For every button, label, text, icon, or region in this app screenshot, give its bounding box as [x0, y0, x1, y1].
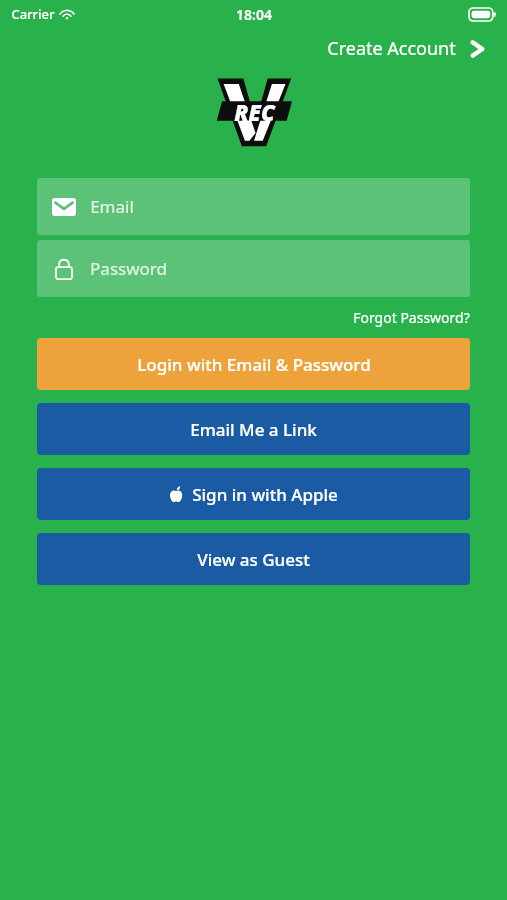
- button[interactable]: Email: [37, 178, 470, 235]
- button[interactable]: Password: [37, 240, 470, 297]
- staticText: Email: [90, 195, 134, 218]
- staticText: 18:04: [236, 5, 272, 24]
- staticText: Carrier: [11, 5, 55, 23]
- button[interactable]: Create Account: [311, 28, 507, 69]
- button[interactable]: Forgot Password?: [341, 306, 507, 329]
- button[interactable]: Login with Email & Password: [37, 338, 470, 390]
- staticText: REC: [234, 97, 275, 127]
- button[interactable]: Email Me a Link: [37, 403, 470, 455]
- staticText: View as Guest: [197, 548, 310, 571]
- button[interactable]: Sign in with Apple: [37, 468, 470, 520]
- staticText: Create Account: [327, 36, 456, 61]
- staticText: Login with Email & Password: [137, 353, 371, 376]
- staticText: Forgot Password?: [353, 308, 470, 327]
- button[interactable]: View as Guest: [37, 533, 470, 585]
- staticText: Email Me a Link: [190, 418, 317, 441]
- staticText: Sign in with Apple: [192, 483, 338, 506]
- staticText: Password: [90, 257, 167, 280]
